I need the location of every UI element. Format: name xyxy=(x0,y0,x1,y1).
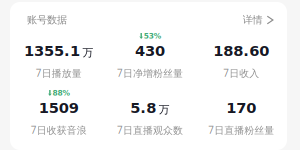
staticText: 7日直播粉丝量 xyxy=(208,123,274,137)
staticText: 万 xyxy=(159,103,170,116)
staticText: 7日收入 xyxy=(223,66,259,80)
staticText: 53% xyxy=(144,32,161,40)
staticText: 170 xyxy=(226,99,256,117)
staticText: 188.60 xyxy=(213,42,269,60)
staticText: 5.8 xyxy=(130,99,156,117)
staticText: 430 xyxy=(135,42,165,60)
staticText: 7日播放量 xyxy=(36,66,82,80)
staticText: 账号数据 xyxy=(27,14,67,26)
staticText: 万 xyxy=(82,46,93,59)
staticText: 7日收获音浪 xyxy=(31,123,87,137)
staticText: 7日直播观众数 xyxy=(117,123,183,137)
staticText: 1355.1 xyxy=(24,42,80,60)
button[interactable]: 详情 xyxy=(242,15,273,25)
staticText: 88% xyxy=(52,89,69,97)
staticText: 7日净增粉丝量 xyxy=(117,66,183,80)
staticText: 详情 xyxy=(242,14,262,26)
staticText: 1509 xyxy=(39,99,79,117)
